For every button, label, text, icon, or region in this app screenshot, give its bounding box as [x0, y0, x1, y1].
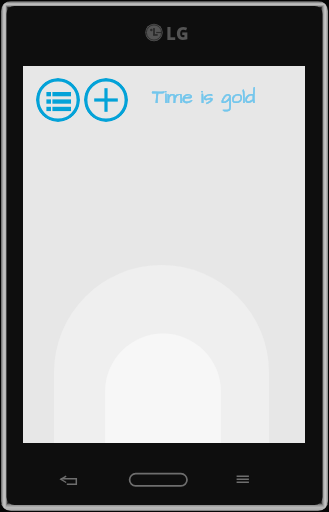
- button[interactable]: List: [36, 78, 80, 122]
- button[interactable]: Add: [84, 78, 128, 122]
- staticText: LG: [166, 22, 189, 41]
- button[interactable]: Menu: [233, 471, 253, 488]
- button[interactable]: Home: [128, 472, 189, 488]
- staticText: Time is gold: [152, 84, 256, 111]
- button[interactable]: Back: [48, 468, 82, 494]
- staticText: Time is gold: [152, 84, 256, 111]
